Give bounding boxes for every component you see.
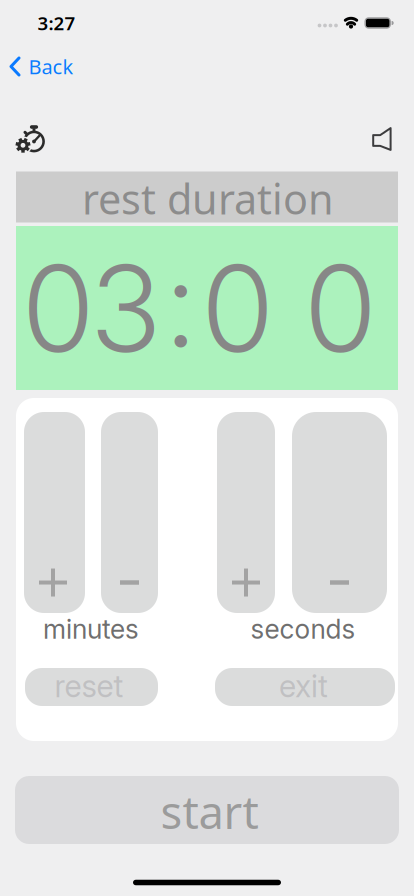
staticText: : xyxy=(164,232,197,375)
staticText: seconds xyxy=(250,613,355,645)
button[interactable]: Sound xyxy=(367,124,397,154)
button[interactable]: Timer settings xyxy=(13,120,53,160)
staticText: 0 xyxy=(201,237,274,380)
button[interactable]: start xyxy=(15,776,399,844)
staticText: 0 xyxy=(21,237,94,380)
button[interactable]: exit xyxy=(215,668,395,706)
staticText: start xyxy=(160,781,258,842)
staticText: Back xyxy=(28,53,73,80)
staticText: rest duration xyxy=(82,171,334,226)
staticText: reset xyxy=(54,667,123,704)
button[interactable]: Decrease seconds xyxy=(292,412,387,613)
button[interactable]: Increase minutes xyxy=(24,412,85,613)
button[interactable]: Decrease minutes xyxy=(101,412,158,613)
staticText: minutes xyxy=(43,613,139,645)
staticText: 3 xyxy=(90,237,162,380)
button[interactable]: reset xyxy=(25,668,158,706)
button[interactable]: Back xyxy=(9,53,73,80)
staticText: exit xyxy=(279,667,328,704)
button[interactable]: Increase seconds xyxy=(217,412,275,613)
staticText: 3:27 xyxy=(37,11,75,35)
staticText: 0 xyxy=(304,237,377,380)
